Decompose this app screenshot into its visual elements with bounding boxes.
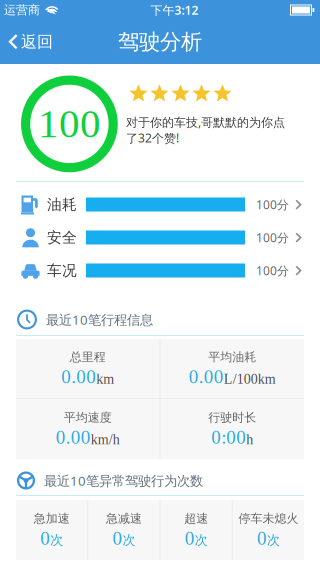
staticText: 停车未熄火 [238,511,298,526]
staticText: 次 [50,532,63,548]
staticText: 行驶时长 [208,410,256,425]
staticText: 0.00 [189,366,224,387]
staticText: 最近10笔行程信息 [46,311,153,328]
button[interactable]: 油耗 [0,188,320,221]
staticText: 急加速 [34,511,70,526]
staticText: h [246,432,253,447]
staticText: km/h [91,432,120,447]
staticText: 次 [267,532,280,548]
staticText: 平均速度 [64,410,112,425]
staticText: 100分 [256,229,289,245]
staticText: 0.00 [61,366,96,387]
staticText: km [96,371,114,387]
staticText: 次 [122,532,135,548]
staticText: 驾驶分析 [118,29,202,55]
staticText: 平均油耗 [208,350,256,364]
staticText: 运营商 [4,3,40,17]
staticText: 0 [112,528,122,549]
staticText: 总里程 [70,350,106,364]
button[interactable]: 返回 [0,20,53,64]
staticText: 油耗 [47,195,77,213]
staticText: 返回 [21,32,53,52]
staticText: 100分 [256,196,289,212]
staticText: L/100km [224,371,276,387]
button[interactable]: 安全 [0,221,320,254]
staticText: 0 [257,528,267,549]
staticText: 超速 [184,511,208,526]
button[interactable]: 车况 [0,254,320,287]
staticText: 100分 [256,262,289,278]
staticText: 0 [185,528,195,549]
staticText: 安全 [47,228,77,246]
staticText: 最近10笔异常驾驶行为次数 [44,472,203,489]
staticText: 对于你的车技,哥默默的为你点了32个赞! [126,114,285,146]
staticText: 0:00 [211,427,246,448]
staticText: 0.00 [56,427,91,448]
staticText: 次 [195,532,208,548]
staticText: 下午3:12 [150,2,198,18]
staticText: 0 [40,528,50,549]
staticText: 急减速 [106,511,142,526]
staticText: 车况 [47,261,77,279]
staticText: 100 [38,101,101,146]
